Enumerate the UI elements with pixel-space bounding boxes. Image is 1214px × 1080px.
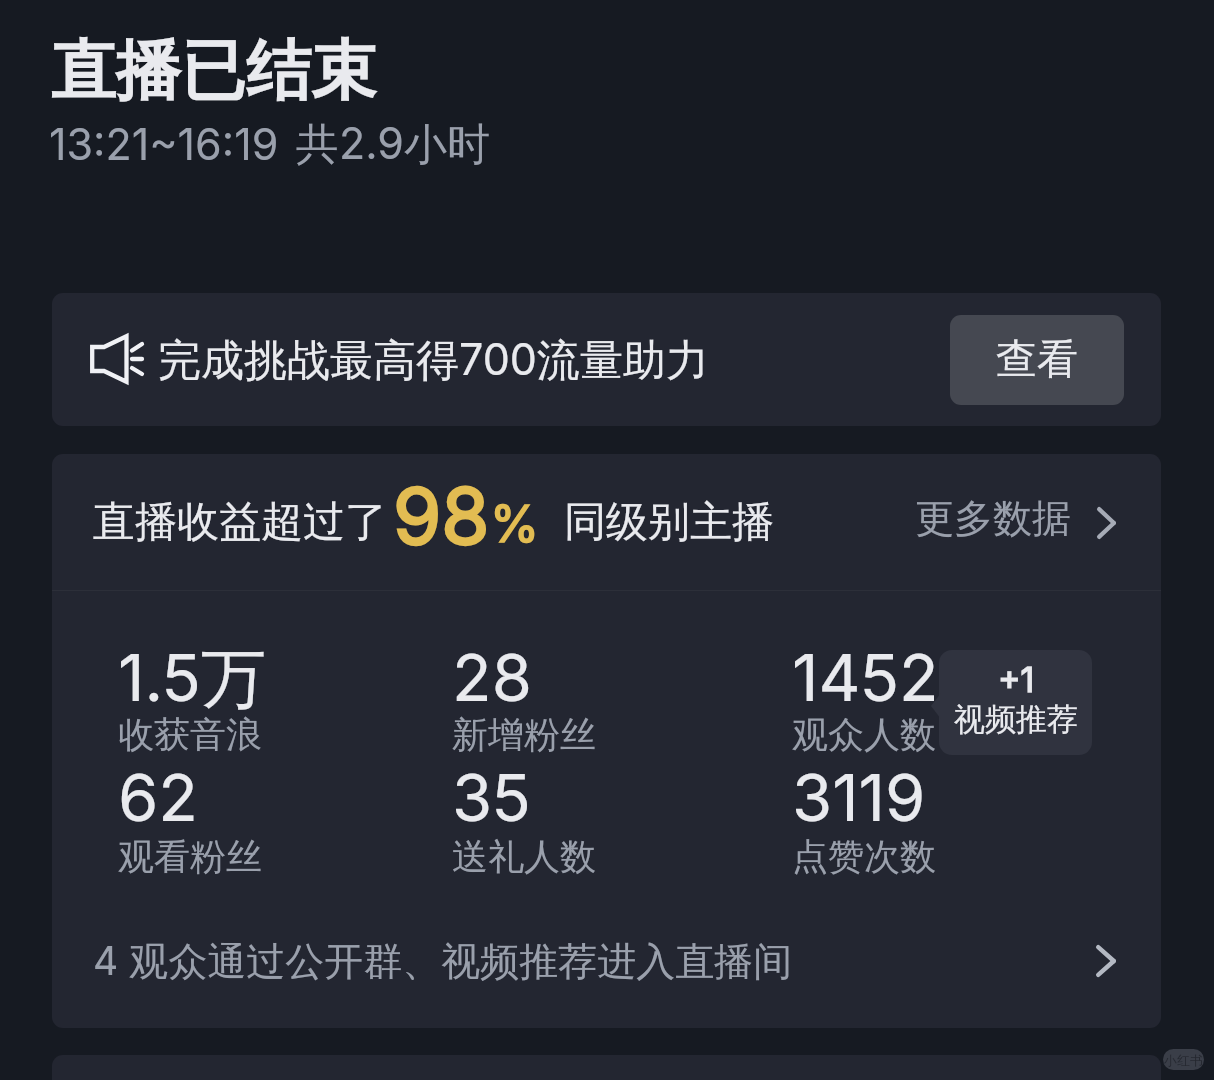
other: More [1096, 945, 1116, 977]
other: More [1097, 507, 1116, 539]
staticText: 3119 [792, 758, 926, 837]
staticText: 13:21~16:19 [49, 118, 279, 170]
button[interactable]: 查看 [950, 315, 1124, 405]
staticText: 新增粉丝 [452, 712, 596, 757]
staticText: 查看 [996, 334, 1078, 386]
staticText: 小红书 [1164, 1052, 1203, 1068]
staticText: 4 观众通过公开群、视频推荐进入直播间 [93, 937, 793, 986]
staticText: 1.5万 [118, 638, 266, 720]
staticText: 点赞次数 [792, 834, 936, 879]
button[interactable]: Announcement [52, 293, 1161, 426]
staticText: 送礼人数 [452, 834, 596, 879]
button[interactable]: 更多数据 [915, 498, 1116, 547]
staticText: 共2.9小时 [296, 117, 490, 171]
button[interactable]: +1 [939, 650, 1092, 755]
other: Announcement [90, 334, 144, 386]
staticText: 1452 [792, 638, 939, 717]
staticText: 视频推荐 [954, 700, 1078, 739]
staticText: 更多数据 [915, 494, 1071, 543]
staticText: 收获音浪 [118, 712, 262, 757]
button[interactable]: 直播收益超过了 [52, 454, 1161, 590]
staticText: 完成挑战最高得700流量助力 [158, 333, 709, 387]
staticText: 观众人数 [792, 712, 936, 757]
staticText: +1 [998, 659, 1035, 700]
staticText: 观看粉丝 [118, 834, 262, 879]
staticText: 直播已结束 [51, 30, 376, 112]
staticText: % [490, 494, 540, 554]
staticText: 直播收益超过了 [93, 496, 387, 549]
staticText: 62 [118, 758, 198, 837]
staticText: 98 [393, 468, 490, 562]
staticText: 28 [452, 638, 532, 717]
staticText: 35 [452, 758, 531, 837]
staticText: 同级别主播 [564, 496, 774, 549]
button[interactable]: 4 观众通过公开群、视频推荐进入直播间 [52, 911, 1161, 1011]
